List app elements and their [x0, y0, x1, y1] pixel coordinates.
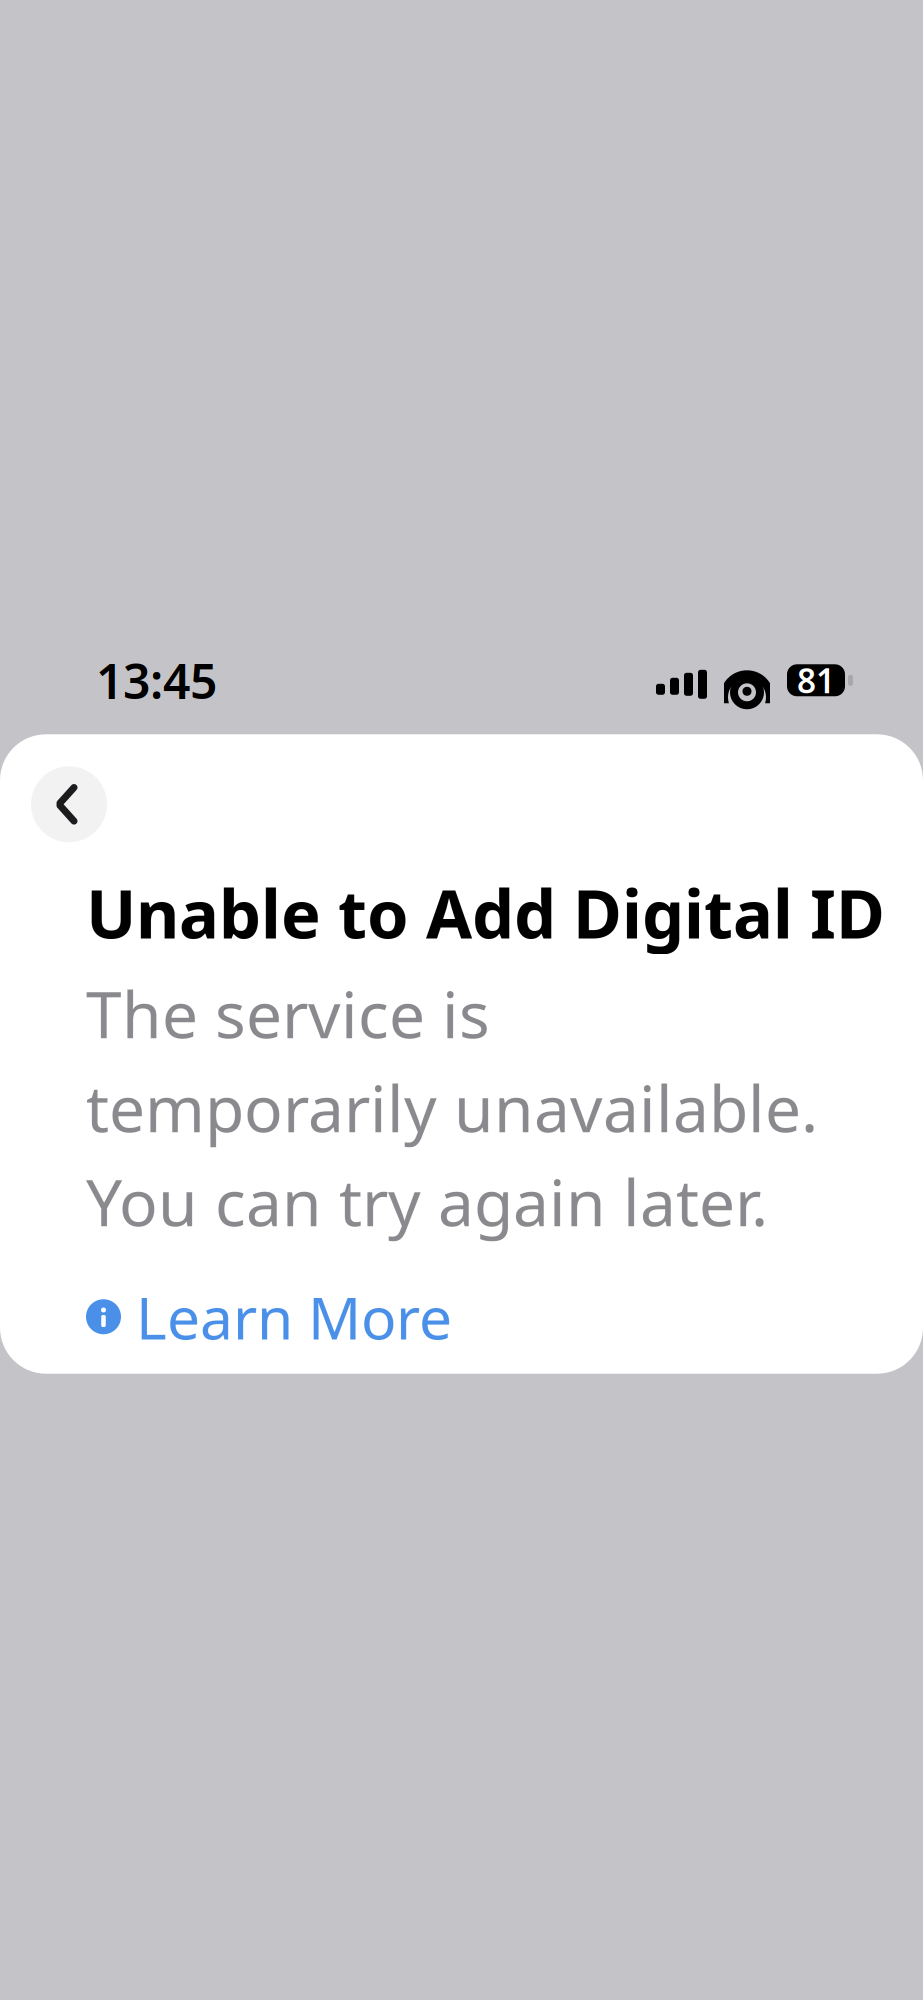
staticText: 81 — [797, 658, 835, 702]
staticText: The service is temporarily unavailable. … — [86, 971, 818, 1244]
staticText: Learn More — [136, 1278, 452, 1356]
button[interactable]: Back — [31, 766, 107, 842]
staticText: 13:45 — [96, 648, 217, 712]
button[interactable]: Learn More — [86, 1268, 452, 1366]
staticText: Unable to Add Digital ID — [86, 868, 885, 957]
